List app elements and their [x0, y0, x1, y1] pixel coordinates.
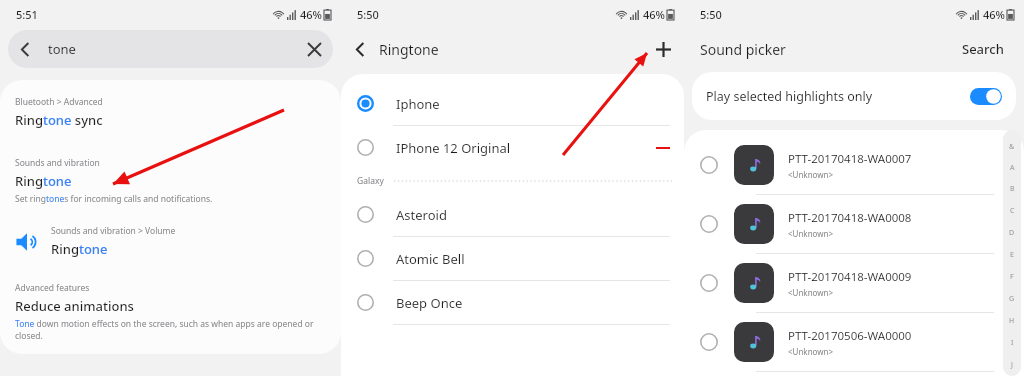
button[interactable]: Advanced features [0, 282, 341, 342]
staticText: D [1009, 228, 1015, 238]
button[interactable]: Back [8, 30, 333, 68]
button[interactable]: Clear [295, 30, 333, 68]
staticText: Advanced features [15, 282, 90, 294]
staticText: Reduce animations [15, 297, 134, 315]
staticText: J [1011, 360, 1013, 370]
button[interactable]: PTT-20170418-WA0007 [684, 136, 1024, 195]
staticText: H [1009, 316, 1015, 326]
button[interactable]: IPhone 12 Original [341, 126, 684, 169]
staticText: Galaxy [357, 175, 384, 187]
staticText: 46% [300, 7, 322, 22]
staticText: Sound picker [700, 40, 786, 59]
button[interactable]: Sounds and vibration [0, 157, 341, 205]
button[interactable]: Back [8, 32, 42, 66]
staticText: Beep Once [396, 294, 463, 312]
staticText: 46% [983, 7, 1005, 22]
staticText: PTT-20170418-WA0009 [788, 269, 912, 285]
staticText: B [1010, 184, 1015, 194]
staticText: <Unknown> [788, 169, 834, 180]
staticText: G [1009, 294, 1015, 304]
staticText: Set ringtones for incoming calls and not… [15, 193, 213, 205]
button[interactable]: Index [1003, 130, 1021, 376]
staticText: A [1010, 163, 1015, 173]
staticText: Ringtone [15, 172, 72, 190]
staticText: Atomic Bell [396, 250, 465, 268]
staticText: C [1010, 206, 1015, 216]
button[interactable]: Play selected highlights only [692, 72, 1016, 120]
button[interactable]: Sounds and vibration > Volume [0, 225, 341, 258]
staticText: 5:50 [357, 7, 379, 22]
button[interactable]: Iphone [341, 82, 684, 126]
staticText: Tone down motion effects on the screen, … [15, 318, 326, 342]
staticText: Bluetooth > Advanced [15, 96, 103, 108]
staticText: tone [48, 40, 76, 58]
staticText: E [1010, 250, 1014, 260]
staticText: F [1010, 272, 1014, 282]
button[interactable]: Beep Once [341, 281, 684, 325]
button[interactable]: Search [958, 36, 1008, 62]
staticText: Play selected highlights only [706, 88, 873, 105]
staticText: & [1009, 142, 1015, 152]
staticText: Ringtone [51, 240, 108, 258]
button[interactable]: PTT-20170506-WA0000 [684, 313, 1024, 372]
staticText: Sounds and vibration [15, 157, 100, 169]
staticText: I [1011, 338, 1014, 348]
button[interactable]: Back [341, 30, 379, 68]
staticText: 5:50 [700, 7, 722, 22]
staticText: 46% [643, 7, 665, 22]
staticText: IPhone 12 Original [396, 139, 511, 157]
button[interactable]: Add [642, 28, 684, 70]
staticText: Asteroid [396, 206, 447, 224]
staticText: Ringtone sync [15, 111, 103, 129]
staticText: Search [962, 40, 1004, 58]
staticText: PTT-20170506-WA0000 [788, 328, 912, 344]
staticText: <Unknown> [788, 228, 834, 239]
staticText: PTT-20170418-WA0008 [788, 210, 912, 226]
button[interactable]: Asteroid [341, 193, 684, 237]
button[interactable]: Atomic Bell [341, 237, 684, 281]
button[interactable]: Bluetooth > Advanced [0, 96, 341, 129]
staticText: Ringtone [379, 40, 439, 59]
staticText: PTT-20170418-WA0007 [788, 151, 912, 167]
staticText: <Unknown> [788, 287, 834, 298]
button[interactable]: PTT-20170418-WA0009 [684, 254, 1024, 313]
staticText: <Unknown> [788, 346, 834, 357]
staticText: Iphone [396, 95, 440, 113]
button[interactable]: PTT-20170418-WA0008 [684, 195, 1024, 254]
staticText: 5:51 [16, 7, 38, 22]
staticText: Sounds and vibration > Volume [51, 225, 176, 237]
